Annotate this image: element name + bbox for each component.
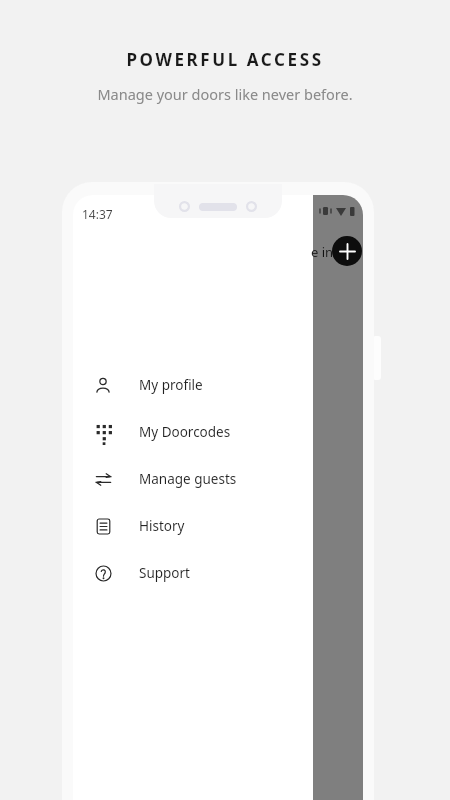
button[interactable]: History	[73, 502, 363, 549]
staticText: 14:37	[82, 206, 113, 222]
button[interactable]: Manage guests	[73, 455, 363, 502]
staticText: Manage guests	[139, 470, 237, 488]
staticText: POWERFUL ACCESS	[126, 48, 324, 71]
staticText: Support	[139, 564, 190, 582]
button[interactable]: My Doorcodes	[73, 408, 363, 455]
button[interactable]: Add	[332, 236, 362, 266]
staticText: Manage your doors like never before.	[97, 84, 353, 104]
button[interactable]: Support	[73, 549, 363, 596]
staticText: My profile	[139, 376, 203, 394]
staticText: e in	[311, 243, 334, 261]
staticText: History	[139, 517, 185, 535]
button[interactable]: My profile	[73, 361, 363, 408]
staticText: My Doorcodes	[139, 423, 231, 441]
